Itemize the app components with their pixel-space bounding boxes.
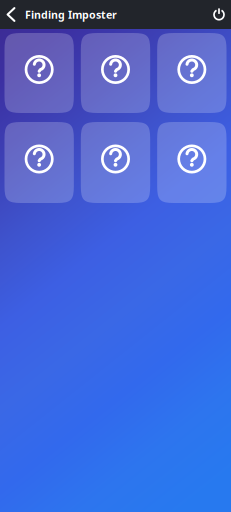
button[interactable]: Back [2,0,20,29]
button[interactable]: Hidden player [81,122,150,203]
staticText: Finding Imposter [25,7,117,22]
button[interactable]: Leave game [208,0,230,29]
button[interactable]: Hidden player [157,33,226,113]
button[interactable]: Hidden player [157,122,226,203]
button[interactable]: Hidden player [4,33,74,113]
button[interactable]: Hidden player [81,33,150,113]
button[interactable]: Hidden player [4,122,74,203]
